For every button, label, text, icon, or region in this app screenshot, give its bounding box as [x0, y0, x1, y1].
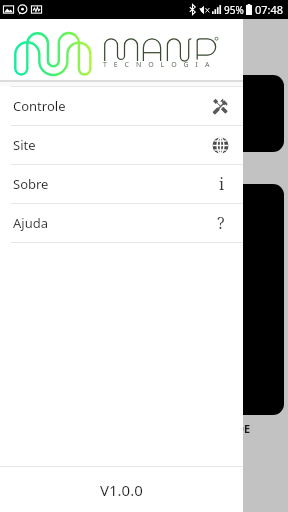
button[interactable]: Ajuda: [0, 204, 243, 242]
staticText: Sobre: [13, 175, 49, 193]
staticText: i: [219, 173, 225, 195]
staticText: V1.0.0: [100, 480, 143, 500]
staticText: 07:48: [255, 2, 284, 17]
staticText: Ajuda: [13, 214, 48, 232]
button[interactable]: Sobre: [0, 165, 243, 203]
button[interactable]: Controle: [0, 87, 243, 125]
staticText: ?: [217, 212, 225, 234]
button[interactable]: Site: [0, 126, 243, 164]
staticText: DE: [236, 421, 251, 436]
staticText: T E C N O L O G I A: [103, 60, 212, 70]
staticText: 95%: [224, 3, 244, 17]
other: Controle: [212, 98, 229, 115]
staticText: Controle: [13, 97, 66, 115]
other: Site: [212, 137, 229, 154]
staticText: Site: [13, 136, 36, 154]
